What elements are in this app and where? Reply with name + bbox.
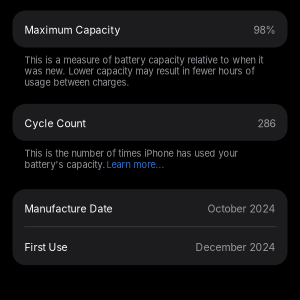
button[interactable]: Learn more... (106, 159, 164, 170)
staticText: First Use (24, 241, 67, 253)
staticText: October 2024 (207, 202, 275, 215)
staticText: 286 (257, 117, 275, 130)
button[interactable]: Manufacture Date (12, 189, 287, 226)
staticText: 98% (253, 24, 275, 36)
staticText: This is the number of times iPhone has u… (24, 148, 237, 159)
staticText: December 2024 (195, 241, 275, 253)
button[interactable]: First Use (12, 227, 287, 265)
staticText: Manufacture Date (24, 202, 112, 215)
button[interactable]: Maximum Capacity (12, 10, 287, 47)
button[interactable]: Cycle Count (12, 104, 287, 141)
staticText: battery's capacity. (24, 159, 105, 170)
staticText: was new. Lower capacity may result in fe… (24, 66, 254, 77)
staticText: Cycle Count (24, 117, 85, 130)
staticText: Learn more... (106, 159, 164, 170)
staticText: This is a measure of battery capacity re… (24, 54, 263, 66)
staticText: usage between charges. (24, 77, 129, 88)
staticText: Maximum Capacity (24, 24, 120, 36)
